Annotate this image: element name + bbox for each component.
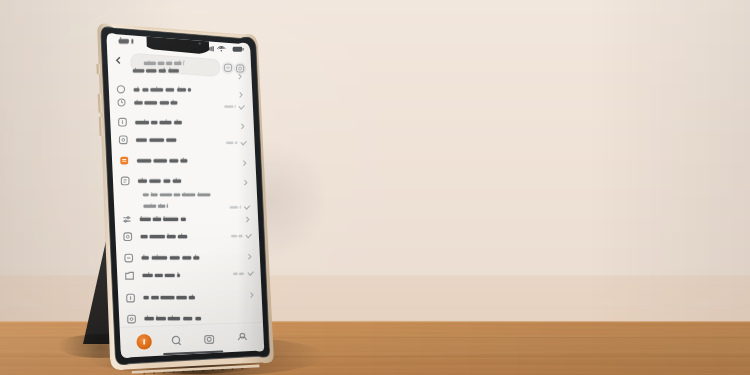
button[interactable]: Phone on stand showing a list app [0,0,750,375]
